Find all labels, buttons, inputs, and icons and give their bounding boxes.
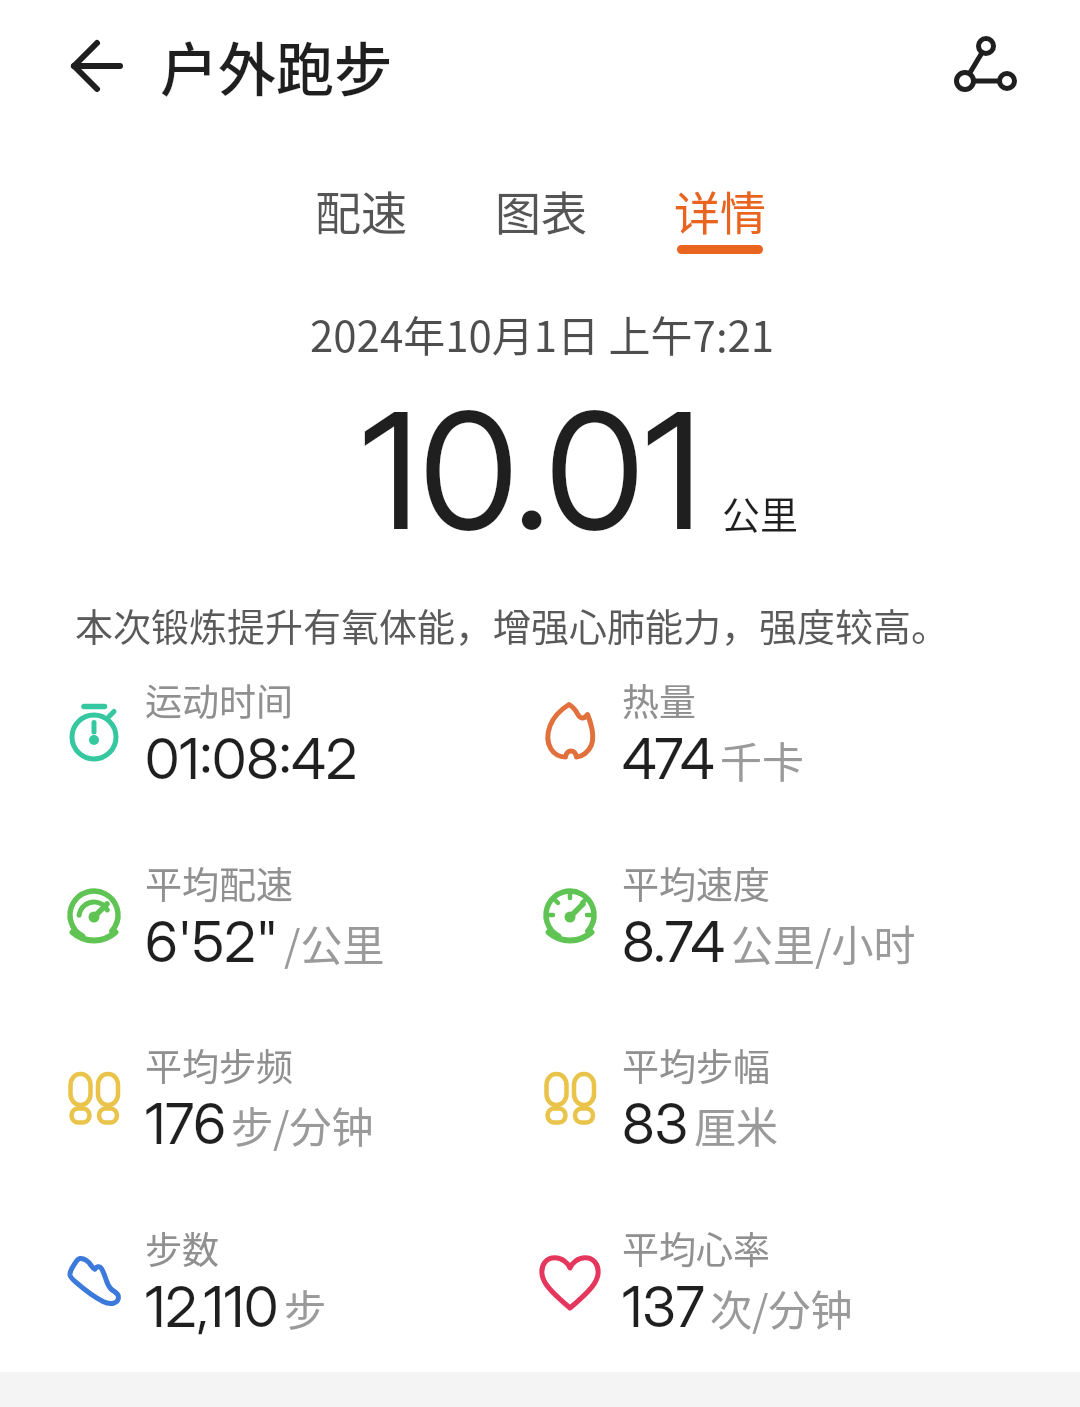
staticText: 步数 [145, 1221, 219, 1275]
button[interactable] [537, 1208, 957, 1338]
staticText: 热量 [622, 673, 696, 727]
staticText: 平均心率 [622, 1221, 770, 1275]
staticText: 公里 [722, 485, 799, 540]
staticText: 6'52" [145, 908, 279, 976]
button[interactable] [537, 660, 957, 790]
staticText: 配速 [315, 177, 407, 244]
staticText: /公里 [284, 912, 385, 973]
staticText: 步/分钟 [231, 1094, 374, 1155]
staticText: 474 [622, 725, 715, 793]
button[interactable] [537, 843, 957, 973]
button[interactable]: 图表 [451, 165, 631, 255]
staticText: 平均步幅 [622, 1038, 770, 1092]
staticText: 户外跑步 [160, 24, 393, 108]
staticText: 10.01 [361, 373, 703, 568]
button[interactable] [537, 1025, 957, 1155]
staticText: 83 [622, 1090, 689, 1158]
button[interactable] [48, 36, 132, 96]
staticText: 176 [145, 1090, 226, 1158]
staticText: 01:08:42 [145, 725, 358, 793]
staticText: 137 [622, 1273, 705, 1341]
button[interactable] [60, 1025, 480, 1155]
staticText: 2024年10月1日 上午7:21 [310, 303, 775, 364]
staticText: 步 [284, 1277, 327, 1338]
staticText: 千卡 [720, 729, 805, 790]
staticText: 公里/小时 [731, 912, 916, 973]
staticText: 图表 [495, 177, 587, 244]
button[interactable] [60, 843, 480, 973]
button[interactable] [60, 660, 480, 790]
staticText: 厘米 [694, 1094, 779, 1155]
button[interactable]: 配速 [271, 165, 451, 255]
staticText: 平均步频 [145, 1038, 293, 1092]
button[interactable]: 详情 [630, 165, 810, 255]
staticText: 运动时间 [145, 673, 293, 727]
staticText: 次/分钟 [710, 1277, 853, 1338]
staticText: 本次锻炼提升有氧体能，增强心肺能力，强度较高。 [75, 597, 950, 652]
staticText: 平均配速 [145, 856, 293, 910]
button[interactable] [60, 1208, 480, 1338]
staticText: 8.74 [622, 908, 726, 976]
button[interactable] [938, 28, 1038, 104]
staticText: 12,110 [145, 1273, 279, 1341]
staticText: 详情 [674, 177, 766, 244]
staticText: 平均速度 [622, 856, 770, 910]
